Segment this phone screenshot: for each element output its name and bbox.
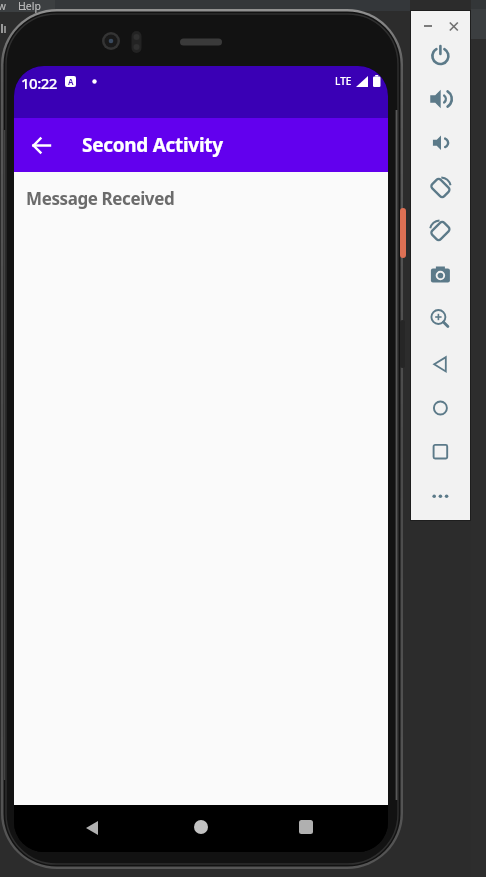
button[interactable] [411,41,470,84]
button[interactable] [411,471,470,514]
staticText: Second Activity [82,132,223,158]
button[interactable] [411,256,470,299]
button[interactable] [86,821,98,835]
button[interactable] [411,170,470,213]
staticText: Message Received [26,187,175,210]
staticText: LTE [335,74,352,88]
button[interactable] [411,428,470,471]
button[interactable] [411,299,470,342]
button[interactable] [194,820,208,834]
button[interactable] [411,385,470,428]
staticText: A [68,76,74,87]
button[interactable] [411,127,470,170]
button[interactable] [411,213,470,256]
staticText: Help [18,0,41,13]
button[interactable] [411,342,470,385]
button[interactable] [14,118,68,172]
staticText: 10:22 [21,73,57,89]
button[interactable] [411,84,470,127]
button[interactable] [299,820,313,834]
staticText: w [0,0,6,13]
